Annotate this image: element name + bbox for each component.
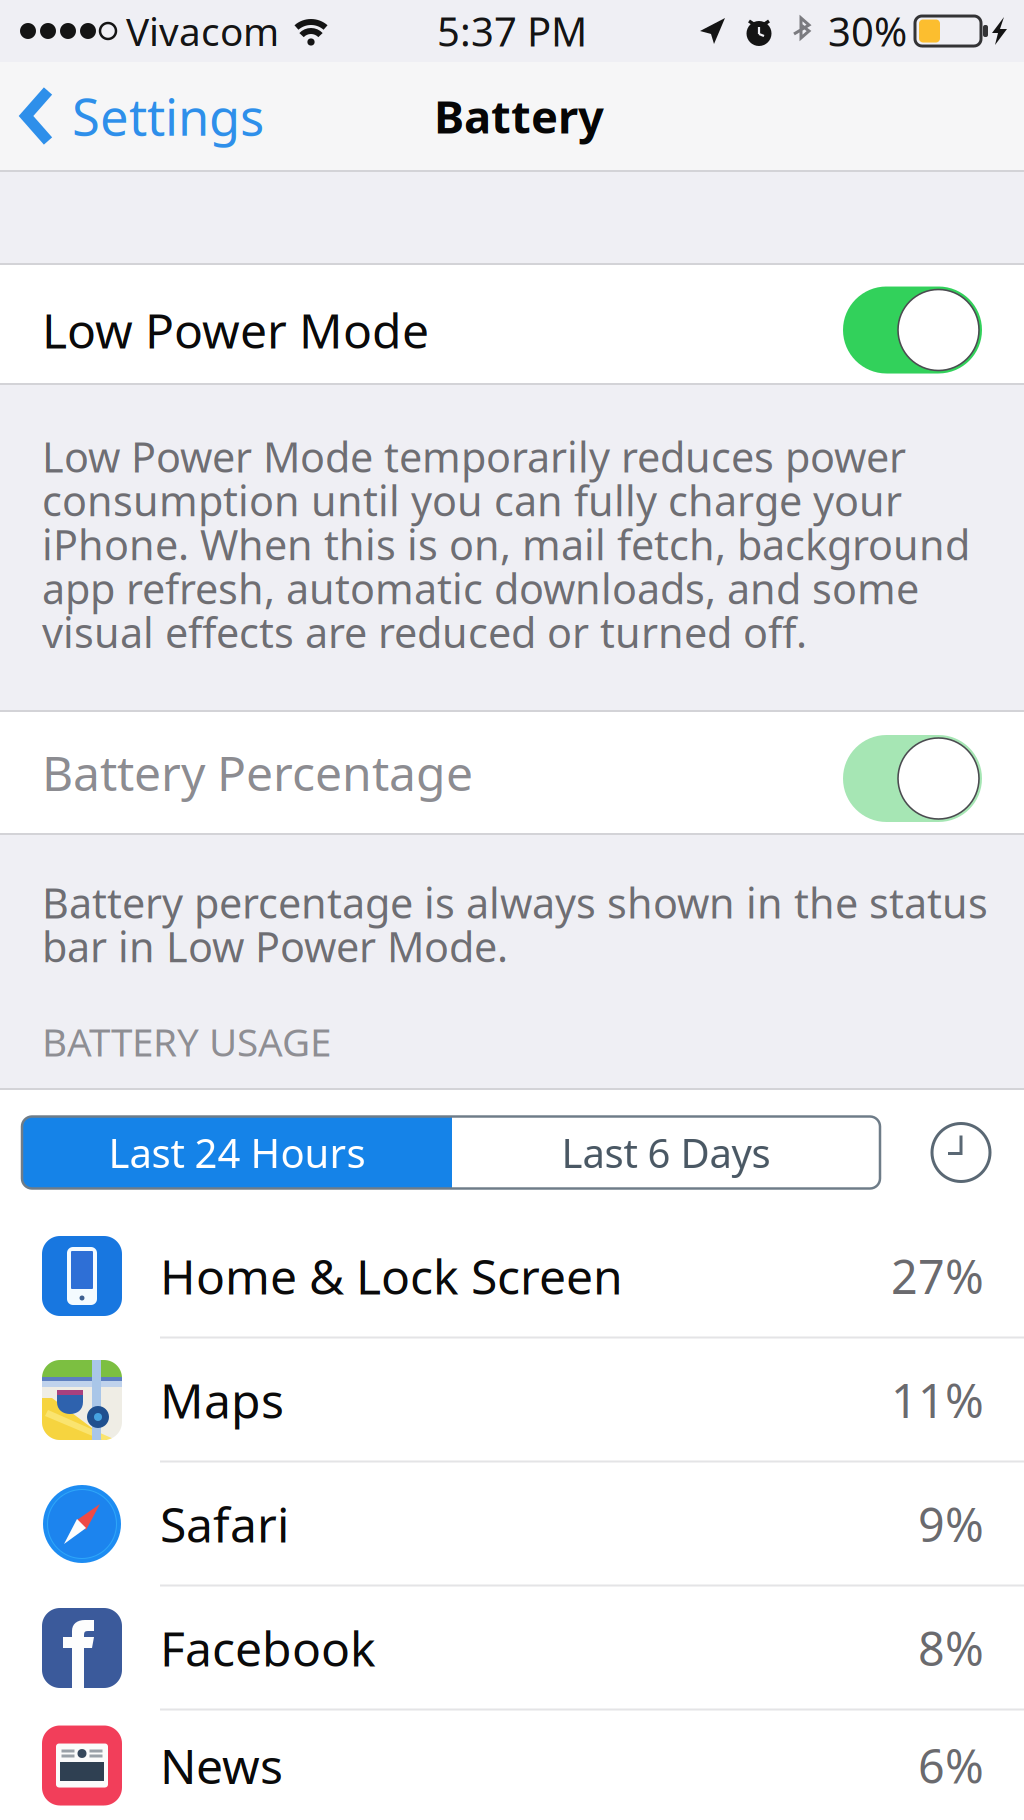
staticText: Battery xyxy=(434,86,604,146)
button[interactable]: Battery usage by time xyxy=(918,1109,1004,1195)
staticText: Battery Percentage xyxy=(42,741,473,804)
staticText: Battery percentage is always shown in th… xyxy=(42,875,988,974)
staticText: 30% xyxy=(828,4,907,57)
staticText: Vivacom xyxy=(126,5,279,57)
button[interactable]: Battery Percentage xyxy=(0,712,1024,833)
button[interactable]: Settings xyxy=(0,62,284,170)
button[interactable]: Low Power Mode xyxy=(0,265,1024,383)
button[interactable]: Last 6 Days xyxy=(452,1116,880,1188)
staticText: Maps xyxy=(160,1368,284,1432)
staticText: 8% xyxy=(918,1617,984,1679)
button[interactable]: Safari xyxy=(0,1463,1024,1587)
staticText: 6% xyxy=(918,1734,984,1796)
staticText: 27% xyxy=(891,1245,984,1307)
staticText: Last 6 Days xyxy=(561,1126,770,1179)
staticText: 9% xyxy=(918,1493,984,1555)
staticText: News xyxy=(160,1734,283,1797)
staticText: BATTERY USAGE xyxy=(42,1016,331,1067)
staticText: Low Power Mode temporarily reduces power… xyxy=(42,429,970,659)
staticText: Safari xyxy=(160,1492,289,1556)
staticText: 11% xyxy=(891,1369,984,1431)
button[interactable]: Facebook xyxy=(0,1587,1024,1711)
staticText: Last 24 Hours xyxy=(108,1126,365,1179)
staticText: 5:37 PM xyxy=(437,4,587,57)
button[interactable]: Last 24 Hours xyxy=(22,1116,452,1188)
staticText: Settings xyxy=(72,82,264,150)
staticText: Low Power Mode xyxy=(42,298,429,362)
staticText: Home & Lock Screen xyxy=(160,1244,623,1308)
staticText: Facebook xyxy=(160,1616,376,1680)
button[interactable]: Home & Lock Screen xyxy=(0,1215,1024,1339)
button[interactable]: News xyxy=(0,1711,1024,1820)
button[interactable]: Maps xyxy=(0,1339,1024,1463)
